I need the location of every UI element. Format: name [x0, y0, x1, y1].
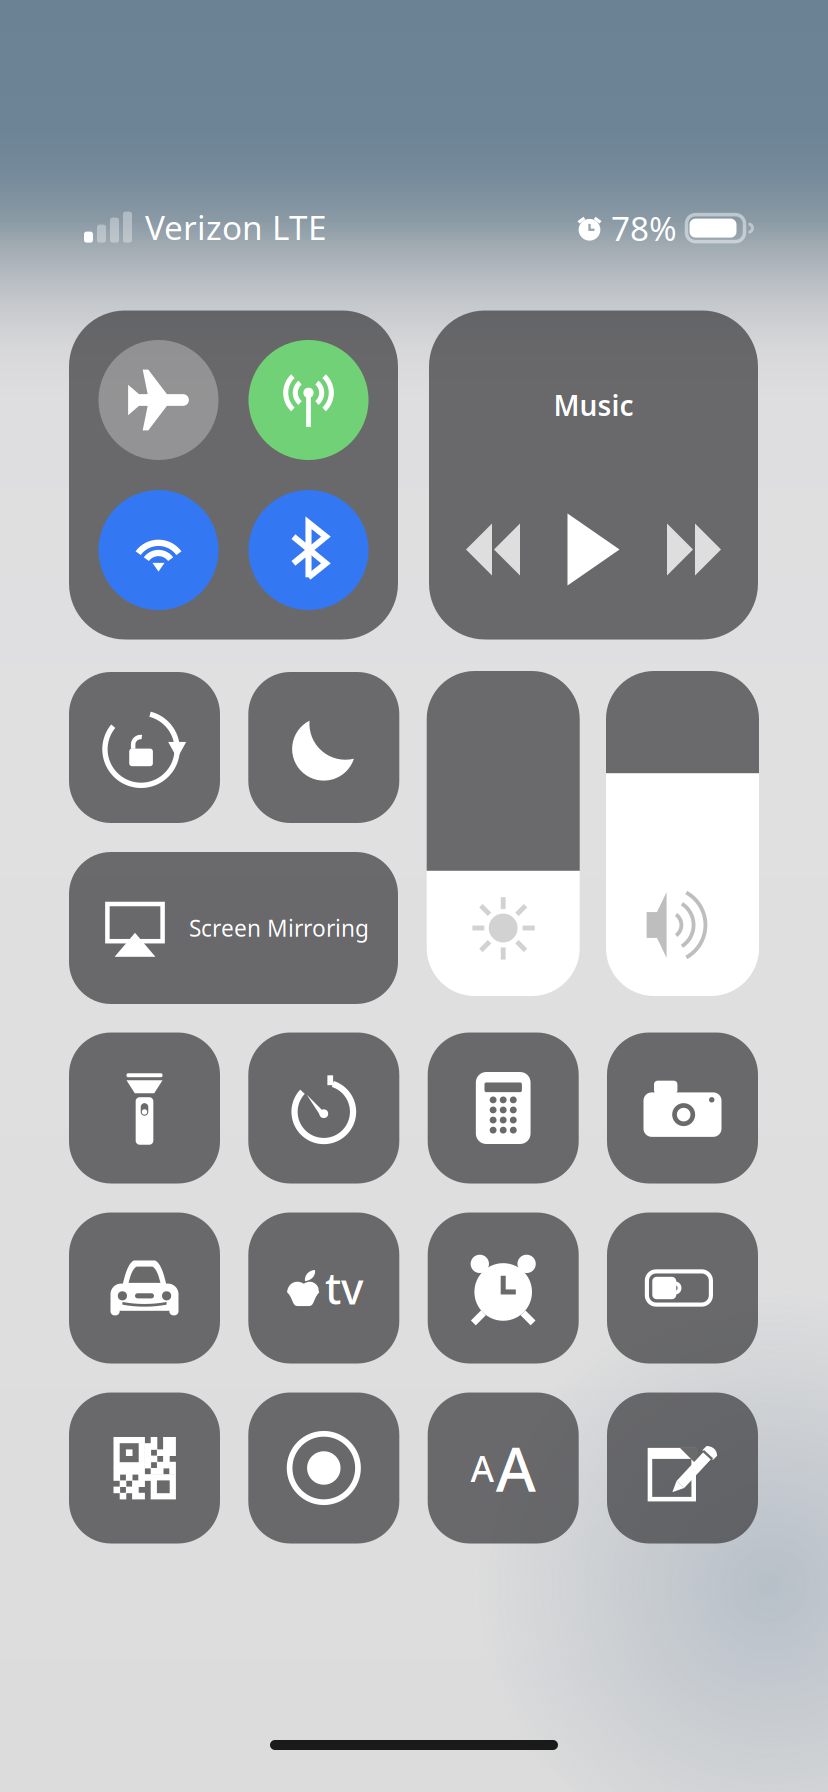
button[interactable]: Scan QR Code: [69, 1392, 220, 1543]
staticText: Verizon LTE: [145, 205, 327, 249]
button[interactable]: Alarm: [428, 1212, 579, 1363]
button[interactable]: Notes: [607, 1392, 758, 1543]
button[interactable]: Airplane Mode: [98, 340, 218, 460]
button[interactable]: Calculator: [428, 1032, 579, 1183]
button[interactable]: Rotation Lock: [69, 672, 220, 823]
button[interactable]: Low Power Mode: [607, 1212, 758, 1363]
staticText: Screen Mirroring: [189, 913, 369, 943]
button[interactable]: Apple TV Remote: [248, 1212, 399, 1363]
button[interactable]: Bluetooth: [248, 490, 368, 610]
button[interactable]: Timer: [248, 1032, 399, 1183]
button[interactable]: Text Size: [428, 1392, 579, 1543]
button[interactable]: Do Not Disturb: [248, 672, 399, 823]
button[interactable]: Brightness: [427, 671, 580, 996]
button[interactable]: Volume: [606, 671, 759, 996]
staticText: Music: [553, 386, 633, 424]
staticText: 78%: [611, 206, 677, 250]
button[interactable]: Fast Forward: [648, 511, 740, 587]
staticText: tv: [325, 1260, 363, 1316]
button[interactable]: Cellular Data: [248, 340, 368, 460]
button[interactable]: Camera: [607, 1032, 758, 1183]
button[interactable]: Screen Recording: [248, 1392, 399, 1543]
button[interactable]: CarPlay: [69, 1212, 220, 1363]
button[interactable]: Play: [547, 505, 639, 593]
button[interactable]: Rewind: [447, 511, 539, 587]
button[interactable]: Wi-Fi: [98, 490, 218, 610]
staticText: A: [471, 1444, 495, 1492]
staticText: A: [496, 1427, 536, 1509]
button[interactable]: Flashlight: [69, 1032, 220, 1183]
button[interactable]: Screen Mirroring: [69, 852, 398, 1004]
